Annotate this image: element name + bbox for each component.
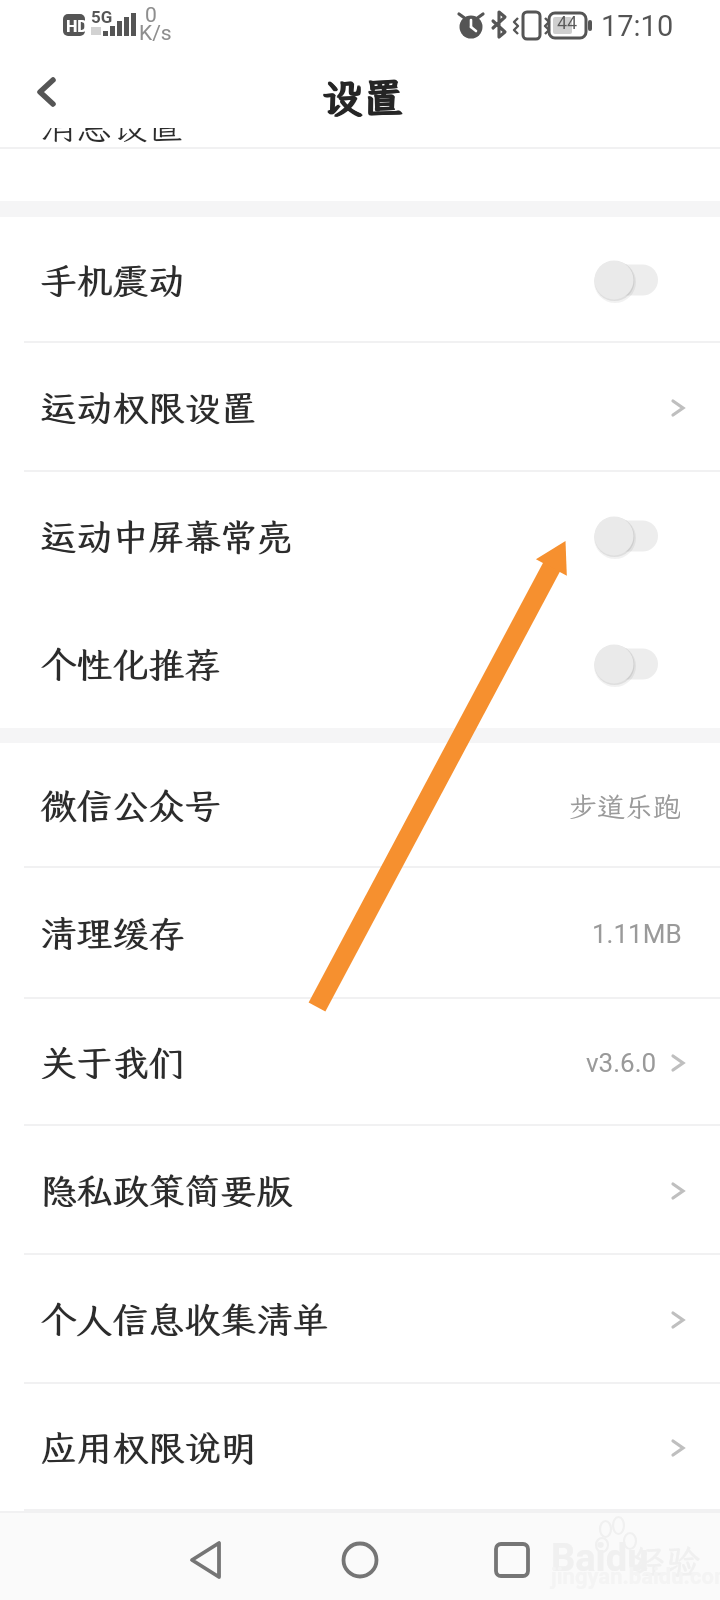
staticText: 设置 (321, 71, 403, 125)
staticText: 关于我们 (41, 1039, 186, 1086)
staticText: 经验 (632, 1539, 700, 1584)
button[interactable]: Back (165, 1520, 245, 1600)
staticText: K/s (139, 21, 172, 46)
staticText: 消息设置 (40, 128, 185, 147)
staticText: 应用权限说明 (40, 1424, 257, 1471)
button[interactable]: 清理缓存 (0, 868, 720, 999)
button[interactable]: Back (12, 62, 76, 126)
staticText: 步道乐跑 (569, 788, 682, 825)
button[interactable]: Recent apps (472, 1520, 552, 1600)
button[interactable]: 微信公众号 (0, 743, 720, 868)
staticText: 清理缓存 (41, 910, 186, 957)
button[interactable]: 运动权限设置 (0, 343, 720, 472)
button[interactable]: 手机震动 (0, 217, 720, 343)
staticText: 运动中屏幕常亮 (41, 513, 294, 560)
staticText: 17:10 (601, 9, 674, 43)
staticText: 个人信息收集清单 (41, 1296, 330, 1343)
staticText: 清理缓存 (40, 910, 185, 957)
staticText: 微信公众号 (41, 782, 222, 829)
button[interactable]: 运动中屏幕常亮 (0, 472, 720, 600)
staticText: v3.6.0 (586, 1048, 657, 1078)
staticText: HD (66, 17, 88, 36)
button[interactable]: 应用权限说明 (0, 1384, 720, 1511)
staticText: Baidu (551, 1536, 649, 1581)
staticText: 设置 (323, 71, 405, 125)
staticText: 运动中屏幕常亮 (40, 513, 293, 560)
button[interactable]: 隐私政策简要版 (0, 1126, 720, 1255)
button[interactable]: 关于我们 (0, 999, 720, 1126)
staticText: 运动权限设置 (41, 384, 258, 431)
staticText: 关于我们 (40, 1039, 185, 1086)
button[interactable]: Home (320, 1520, 400, 1600)
staticText: 44 (557, 12, 578, 33)
staticText: 设置 (321, 70, 403, 124)
staticText: jingyan.baidu.com (551, 1564, 720, 1590)
button[interactable]: 个人信息收集清单 (0, 1255, 720, 1384)
staticText: 微信公众号 (40, 782, 221, 829)
staticText: 5G (91, 7, 113, 27)
staticText: 手机震动 (40, 257, 185, 304)
staticText: 个人信息收集清单 (40, 1296, 329, 1343)
button[interactable]: 运动中屏幕常亮 switch (593, 512, 665, 560)
button[interactable]: 个性化推荐 switch (593, 640, 665, 688)
staticText: 个性化推荐 (40, 641, 221, 688)
staticText: 1.11MB (592, 919, 682, 949)
staticText: 运动权限设置 (40, 384, 257, 431)
staticText: 0 (145, 3, 157, 28)
staticText: 隐私政策简要版 (40, 1167, 293, 1214)
staticText: 隐私政策简要版 (41, 1167, 294, 1214)
staticText: 个性化推荐 (41, 641, 222, 688)
staticText: 设置 (322, 71, 404, 125)
staticText: 设置 (322, 70, 404, 124)
button[interactable]: 个性化推荐 (0, 600, 720, 728)
staticText: 应用权限说明 (41, 1424, 258, 1471)
staticText: 手机震动 (41, 257, 186, 304)
button[interactable]: 手机震动 switch (593, 256, 665, 304)
